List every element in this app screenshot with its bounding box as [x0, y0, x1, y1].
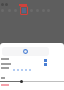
button[interactable]: Back: [1, 3, 4, 6]
button[interactable]: Selected item: [20, 6, 28, 15]
button[interactable]: Slider thumb: [20, 80, 23, 83]
button[interactable]: Menu: [5, 3, 8, 6]
button[interactable]: [2, 47, 49, 56]
